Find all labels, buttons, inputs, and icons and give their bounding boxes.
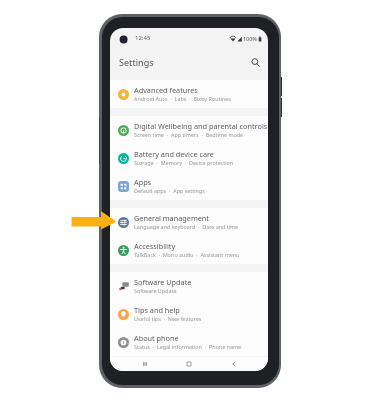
staticText: Android Auto · Labs · Bixby Routines: [134, 95, 231, 102]
staticText: TalkBack · Mono audio · Assistant menu: [134, 251, 240, 258]
button[interactable]: Tips and help: [110, 300, 268, 328]
button[interactable]: Recents: [135, 357, 155, 371]
staticText: 100%: [243, 35, 257, 42]
button[interactable]: Advanced features: [110, 80, 268, 108]
staticText: About phone: [134, 333, 179, 343]
staticText: Advanced features: [134, 85, 198, 95]
button[interactable]: Search: [247, 54, 263, 70]
button[interactable]: Software Update: [110, 272, 268, 300]
button[interactable]: Digital Wellbeing and parental controls: [110, 116, 268, 144]
button[interactable]: General management: [110, 208, 268, 236]
staticText: Software Update: [134, 277, 192, 287]
staticText: Accessibility: [134, 241, 176, 251]
button[interactable]: Back: [224, 357, 244, 371]
staticText: Settings: [119, 56, 154, 68]
staticText: Default apps · App settings: [134, 187, 205, 194]
staticText: General management: [134, 213, 209, 223]
button[interactable]: Accessibility: [110, 236, 268, 264]
staticText: Apps: [134, 177, 152, 187]
staticText: Useful tips · New features: [134, 315, 202, 322]
staticText: Tips and help: [134, 305, 180, 315]
staticText: Language and keyboard · Date and time: [134, 223, 239, 230]
staticText: Screen time · App timers · Bedtime mode: [134, 131, 244, 138]
staticText: Digital Wellbeing and parental controls: [134, 121, 268, 131]
button[interactable]: Battery and device care: [110, 144, 268, 172]
staticText: Battery and device care: [134, 149, 214, 159]
staticText: Status · Legal information · Phone name: [134, 343, 242, 350]
staticText: Software Update: [134, 287, 177, 294]
button[interactable]: Home: [179, 357, 199, 371]
button[interactable]: About phone: [110, 328, 268, 356]
button[interactable]: Apps: [110, 172, 268, 200]
staticText: 12:45: [135, 34, 151, 42]
staticText: Storage · Memory · Device protection: [134, 159, 234, 166]
